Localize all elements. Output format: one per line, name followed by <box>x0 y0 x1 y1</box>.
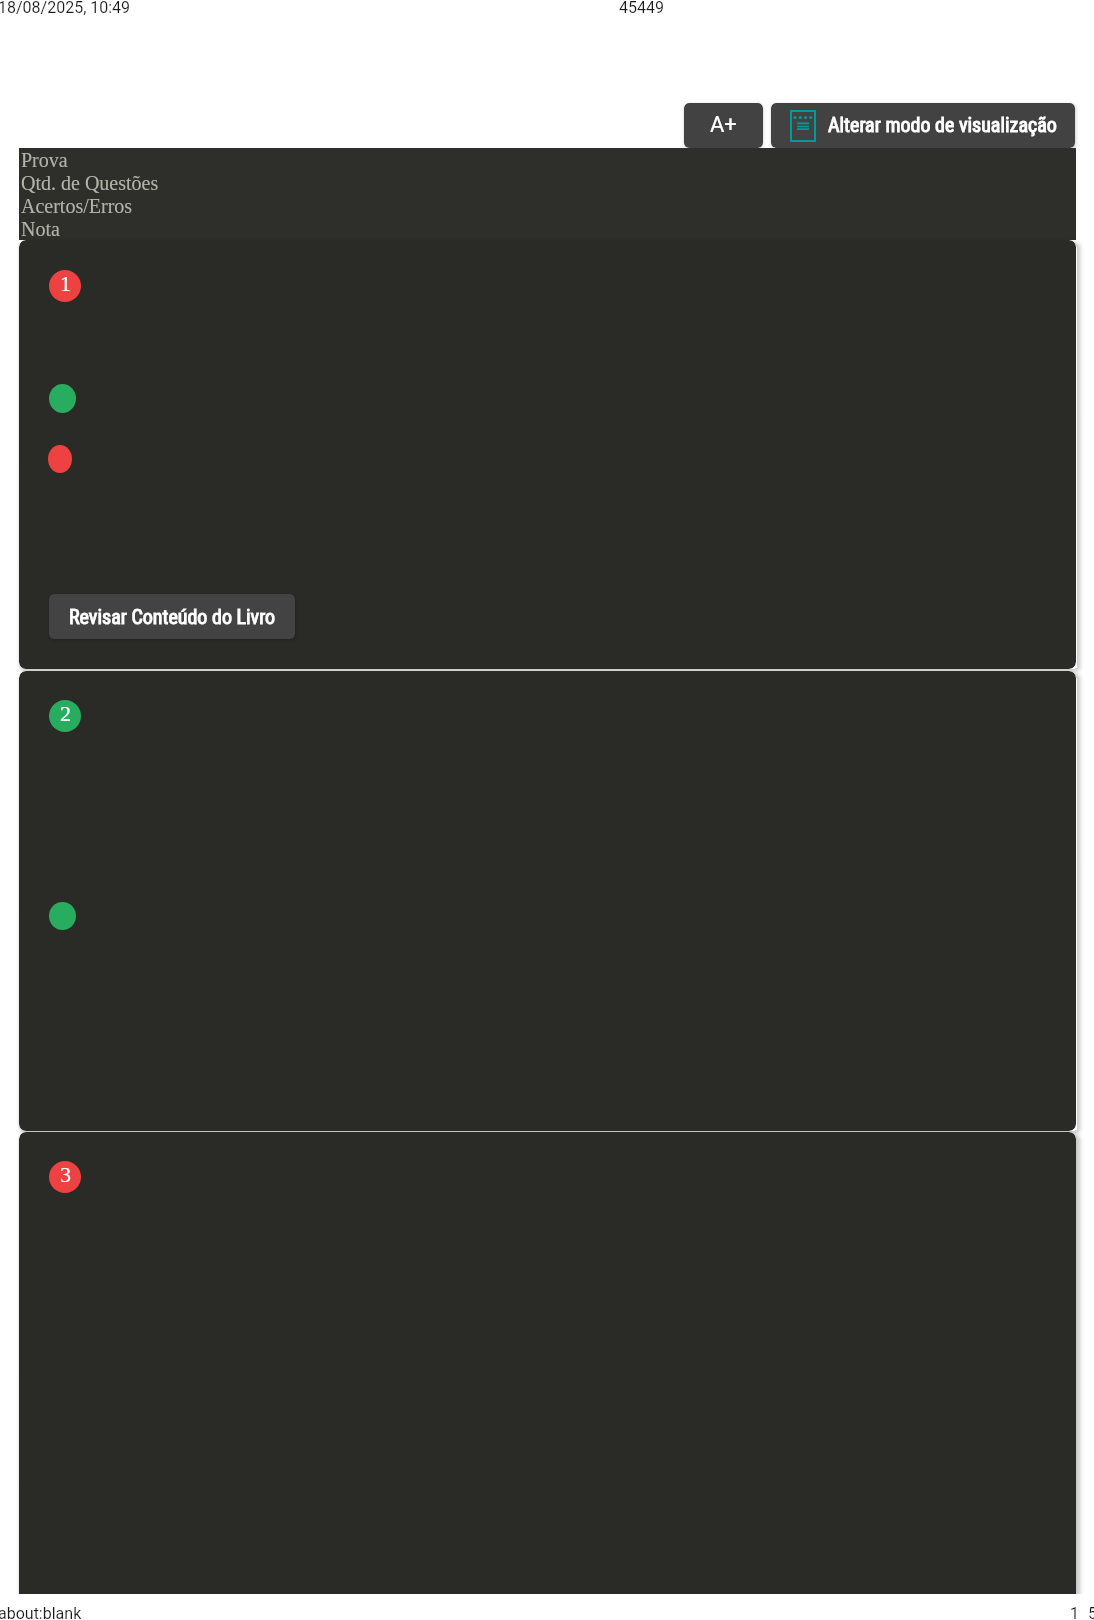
button[interactable]: 3 <box>19 1132 1076 1594</box>
button[interactable]: Revisar Conteúdo do Livro <box>49 594 295 639</box>
staticText: about:blank <box>0 1604 82 1620</box>
button[interactable]: A+ <box>684 103 763 148</box>
button[interactable]: Alterar modo de visualização <box>771 103 1075 148</box>
staticText: Revisar Conteúdo do Livro <box>69 605 276 628</box>
staticText: A+ <box>710 112 737 138</box>
other: Alterar modo de visualização <box>790 110 816 142</box>
staticText: Acertos/Erros <box>21 195 133 217</box>
staticText: 45449 <box>619 0 664 17</box>
button[interactable]: 1 <box>19 240 1076 669</box>
staticText: 1 <box>60 271 71 295</box>
button[interactable]: 2 <box>19 671 1076 1131</box>
staticText: Prova <box>21 149 68 171</box>
staticText: Qtd. de Questões <box>21 172 159 194</box>
staticText: 1 5 <box>1070 1604 1094 1620</box>
staticText: 18/08/2025, 10:49 <box>0 0 131 17</box>
staticText: Alterar modo de visualização <box>828 113 1057 136</box>
staticText: 3 <box>60 1162 71 1186</box>
staticText: Nota <box>21 218 60 240</box>
staticText: 2 <box>60 701 71 725</box>
